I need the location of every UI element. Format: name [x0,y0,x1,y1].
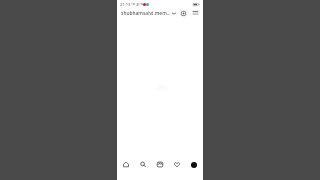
button[interactable]: New post [178,7,189,20]
button[interactable]: Profile [188,159,199,170]
button[interactable]: Reels [154,159,165,170]
staticText: 21:13 ᵀᴹ 4ᴵ ᴵᴺ [120,2,144,7]
button[interactable]: Search [137,159,148,170]
staticText: shubhamsalvi.mem… [121,10,171,17]
button[interactable]: Home [120,159,131,170]
button[interactable]: Activity [171,159,182,170]
button[interactable]: shubhamsalvi.mem… [117,7,178,20]
button[interactable]: Menu [189,7,200,20]
